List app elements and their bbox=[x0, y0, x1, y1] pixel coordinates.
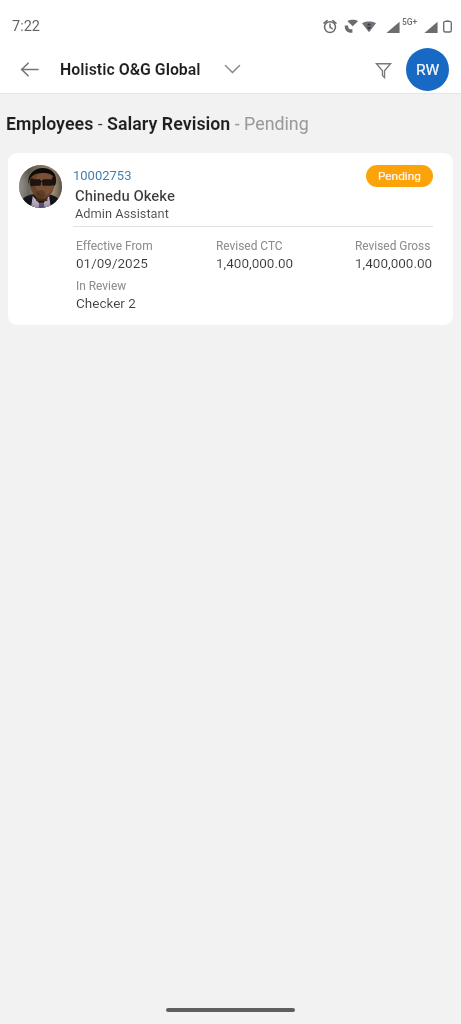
button[interactable]: Holistic O&G Global bbox=[60, 60, 201, 79]
button[interactable]: RW bbox=[406, 48, 449, 91]
staticText: 1,400,000.00 bbox=[216, 255, 294, 271]
staticText: 5G+ bbox=[402, 17, 418, 27]
staticText: Effective From bbox=[76, 239, 153, 253]
staticText: Checker 2 bbox=[76, 295, 136, 311]
staticText: 01/09/2025 bbox=[76, 255, 148, 271]
staticText: RW bbox=[416, 61, 440, 79]
staticText: Holistic O&G Global bbox=[60, 60, 201, 79]
button[interactable]: Pending bbox=[366, 165, 433, 187]
staticText: Chinedu Okeke bbox=[75, 187, 175, 204]
staticText: Revised CTC bbox=[216, 239, 283, 253]
button[interactable]: 10002753 bbox=[8, 153, 453, 325]
staticText: Employees - Salary Revision - Pending bbox=[6, 113, 461, 134]
staticText: 10002753 bbox=[73, 168, 132, 183]
staticText: 1,400,000.00 bbox=[355, 255, 433, 271]
staticText: Admin Assistant bbox=[75, 206, 169, 221]
staticText: Revised Gross bbox=[355, 239, 431, 253]
button[interactable]: Back bbox=[9, 49, 49, 89]
button[interactable]: Filter bbox=[363, 50, 403, 90]
staticText: 7:22 bbox=[12, 18, 40, 35]
staticText: In Review bbox=[76, 279, 127, 293]
staticText: Pending bbox=[378, 169, 421, 183]
